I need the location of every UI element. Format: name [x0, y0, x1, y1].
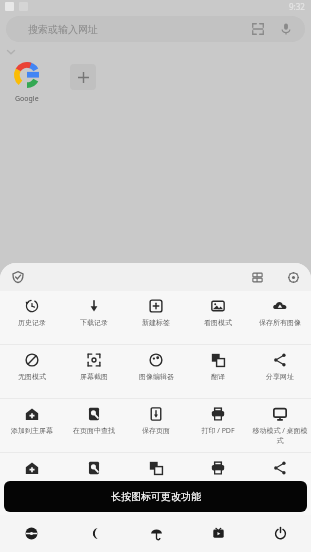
button[interactable]: 无图模式: [0, 345, 63, 398]
button[interactable]: Night mode: [63, 515, 125, 552]
button[interactable]: Videos: [187, 515, 249, 552]
button[interactable]: Exit: [249, 515, 311, 552]
staticText: 分享网址: [266, 372, 294, 381]
staticText: 搜索或输入网址: [28, 23, 98, 36]
staticText: 历史记录: [18, 318, 46, 327]
staticText: 添加到主屏幕: [11, 426, 53, 435]
button[interactable]: Add shortcut: [70, 64, 96, 90]
button[interactable]: 图像编辑器: [125, 345, 187, 398]
button[interactable]: [249, 453, 311, 506]
staticText: 屏幕截图: [80, 372, 108, 381]
staticText: 图像编辑器: [139, 372, 174, 381]
button[interactable]: 在页面中查找: [63, 399, 125, 452]
staticText: 打印 / PDF: [201, 426, 235, 436]
button[interactable]: 屏幕截图: [63, 345, 125, 398]
button[interactable]: [125, 453, 187, 506]
button[interactable]: 移动模式 / 桌面模式: [249, 399, 311, 452]
button[interactable]: [63, 453, 125, 506]
button[interactable]: 保存所有图像: [249, 291, 311, 344]
button[interactable]: Voice search: [275, 18, 297, 40]
staticText: 移动模式 / 桌面模式: [250, 426, 310, 445]
staticText: 新建标签: [142, 318, 170, 327]
staticText: 无图模式: [18, 372, 46, 381]
staticText: Google: [15, 94, 39, 104]
button[interactable]: 搜索或输入网址: [6, 16, 305, 42]
staticText: 在页面中查找: [73, 426, 115, 435]
button[interactable]: 下载记录: [63, 291, 125, 344]
button[interactable]: Scan QR code: [247, 18, 269, 40]
button[interactable]: Settings: [283, 267, 303, 287]
staticText: 长按图标可更改功能: [111, 490, 201, 503]
button[interactable]: 历史记录: [0, 291, 63, 344]
staticText: 保存页面: [142, 426, 170, 435]
button[interactable]: 添加到主屏幕: [0, 399, 63, 452]
button[interactable]: 新建标签: [125, 291, 187, 344]
button[interactable]: Privacy: [125, 515, 187, 552]
staticText: 看图模式: [204, 318, 232, 327]
staticText: 保存所有图像: [259, 318, 301, 327]
staticText: 翻译: [211, 372, 225, 381]
button[interactable]: Bookmarks: [247, 267, 267, 287]
staticText: 9:32: [289, 1, 305, 12]
staticText: 下载记录: [80, 318, 108, 327]
button[interactable]: 看图模式: [187, 291, 249, 344]
button[interactable]: Site security info: [8, 267, 28, 287]
button[interactable]: Browser home: [0, 515, 63, 552]
button[interactable]: 分享网址: [249, 345, 311, 398]
button[interactable]: [187, 453, 249, 506]
button[interactable]: [0, 453, 63, 506]
button[interactable]: 翻译: [187, 345, 249, 398]
button[interactable]: 打印 / PDF: [187, 399, 249, 452]
button[interactable]: 保存页面: [125, 399, 187, 452]
